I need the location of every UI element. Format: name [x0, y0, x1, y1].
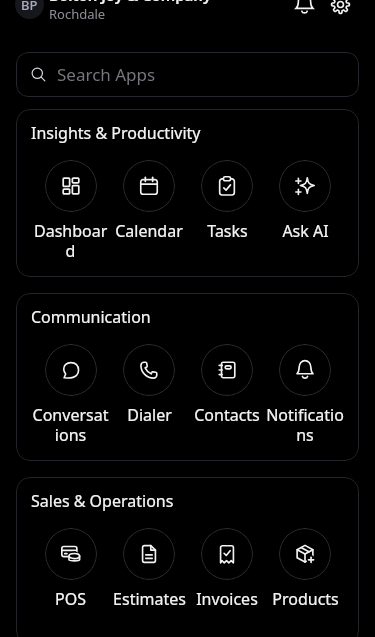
staticText: Calendar [115, 220, 183, 242]
button[interactable]: POS [31, 528, 110, 628]
button[interactable]: Conversations [31, 344, 110, 444]
staticText: Products [272, 588, 339, 610]
button[interactable]: Invoices [188, 528, 266, 628]
staticText: Dialer [127, 404, 172, 426]
staticText: Search Apps [57, 63, 156, 86]
staticText: BP [21, 0, 38, 14]
button[interactable]: Dashboard [31, 160, 110, 260]
staticText: Estimates [113, 588, 186, 610]
button[interactable]: Contacts [188, 344, 266, 444]
staticText: Rochdale [49, 5, 106, 23]
button[interactable]: Search Apps [16, 52, 359, 97]
staticText: Tasks [207, 220, 248, 242]
staticText: Conversations [31, 404, 110, 444]
staticText: Notifications [266, 404, 344, 444]
staticText: Sales & Operations [31, 490, 174, 512]
staticText: Dashboard [31, 220, 110, 260]
staticText: Invoices [196, 588, 258, 610]
staticText: Ask AI [282, 220, 329, 242]
button[interactable]: Estimates [110, 528, 188, 628]
staticText: Insights & Productivity [31, 122, 201, 144]
staticText: Communication [31, 306, 151, 328]
button[interactable]: Profile [15, 0, 44, 19]
button[interactable]: Dialer [110, 344, 188, 444]
button[interactable]: Calendar [110, 160, 188, 260]
staticText: Contacts [194, 404, 260, 426]
button[interactable]: Notifications [266, 344, 344, 444]
button[interactable]: Tasks [188, 160, 266, 260]
staticText: POS [55, 588, 86, 610]
staticText: Bolton Joy & Company [49, 0, 212, 5]
button[interactable]: Ask AI [266, 160, 344, 260]
button[interactable]: Notifications [288, 0, 320, 20]
button[interactable]: Settings [324, 0, 356, 20]
button[interactable]: Products [266, 528, 344, 628]
